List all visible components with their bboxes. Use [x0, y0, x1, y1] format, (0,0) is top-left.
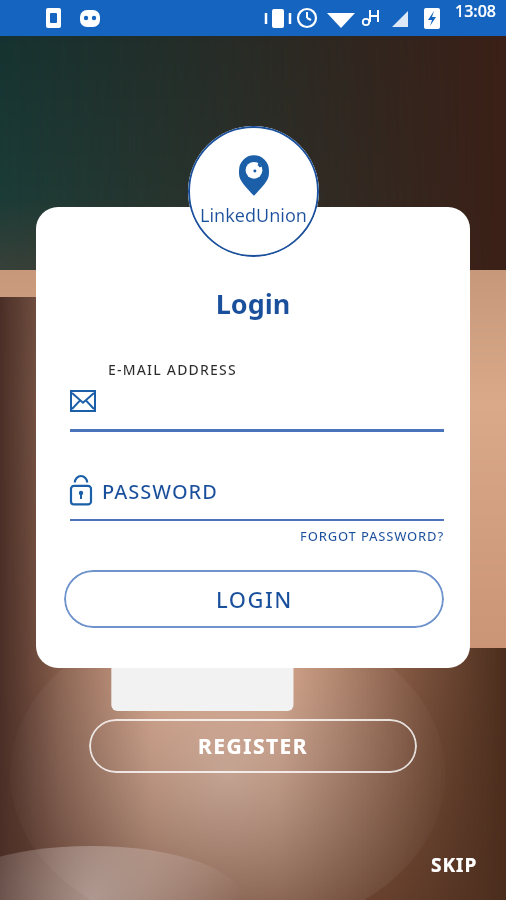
staticText: LOGIN	[216, 584, 293, 614]
staticText: PASSWORD	[102, 478, 218, 505]
staticText: E-MAIL ADDRESS	[108, 360, 237, 379]
button[interactable]: FORGOT PASSWORD?	[64, 527, 444, 545]
staticText: LinkedUnion	[200, 203, 307, 228]
staticText: SKIP	[431, 852, 478, 878]
staticText: 13:08	[0, 0, 496, 36]
button[interactable]: REGISTER	[89, 719, 417, 773]
button[interactable]: SKIP	[425, 846, 484, 884]
staticText: REGISTER	[198, 732, 309, 761]
staticText: Login	[36, 285, 470, 322]
button[interactable]: LOGIN	[64, 570, 444, 628]
button[interactable]	[64, 380, 444, 432]
button[interactable]: PASSWORD	[64, 469, 444, 521]
